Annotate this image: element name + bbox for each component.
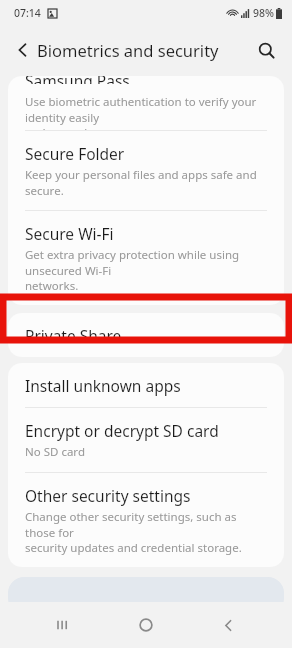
button[interactable]: Encrypt or decrypt SD card [8,408,284,472]
staticText: Private Share [25,325,122,346]
staticText: Install unknown apps [25,375,181,396]
staticText: Secure Wi-Fi [25,223,114,244]
button[interactable]: Search [249,33,283,67]
button[interactable]: Other security settings [8,473,284,567]
staticText: Other security settings [25,485,191,506]
button[interactable]: Private Share [8,313,284,357]
staticText: Secure Folder [25,143,125,164]
button[interactable]: Back [210,607,246,643]
button[interactable]: Samsung Pass [8,76,284,130]
button[interactable]: Recent apps [46,607,82,643]
button[interactable]: Back [6,33,40,67]
staticText: Biometrics and security [37,39,219,61]
staticText: No SD card [25,444,85,460]
staticText: Keep your personal files and apps safe a… [25,167,267,198]
staticText: Use biometric authentication to verify y… [25,94,267,130]
button[interactable]: Home [128,607,164,643]
staticText: 98% [253,6,274,20]
staticText: Change other security settings, such as … [25,509,267,555]
button[interactable]: Install unknown apps [8,363,284,407]
button[interactable]: Secure Wi-Fi [8,211,284,305]
staticText: Samsung Pass [25,76,130,84]
staticText: 07:14 [14,6,41,20]
button[interactable]: Secure Folder [8,131,284,210]
staticText: Get extra privacy protection while using… [25,247,267,293]
staticText: Encrypt or decrypt SD card [25,420,219,441]
